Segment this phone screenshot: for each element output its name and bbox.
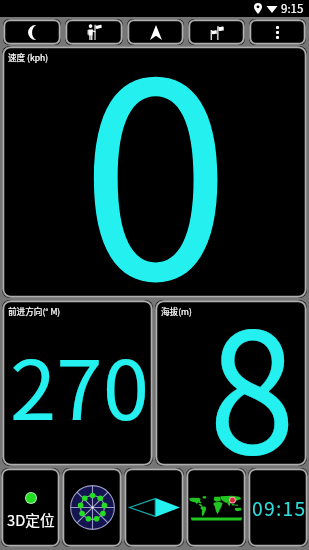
button[interactable]: More options <box>249 19 306 45</box>
staticText: 9:15 <box>281 0 304 17</box>
staticText: 速度 (kph) <box>8 51 49 63</box>
staticText: 前进方向(° M) <box>8 305 61 317</box>
staticText: 09:15 <box>252 494 307 522</box>
button[interactable]: Compass heading <box>124 468 184 547</box>
button[interactable]: Satellite sky view <box>62 468 122 547</box>
button[interactable]: Night mode <box>3 19 61 45</box>
button[interactable]: Route <box>188 19 245 45</box>
staticText: 海拔(m) <box>161 305 192 317</box>
staticText: 3D定位 <box>7 509 55 530</box>
button[interactable]: World map <box>186 468 246 547</box>
button[interactable]: Clock 09:15 <box>248 468 308 547</box>
staticText: 8 <box>208 300 296 466</box>
button[interactable]: Waypoint <box>65 19 123 45</box>
button[interactable]: GPS fix status: 3D <box>1 468 60 547</box>
staticText: 0 <box>80 46 231 298</box>
button[interactable]: Navigate <box>127 19 184 45</box>
staticText: 270 <box>10 325 149 444</box>
